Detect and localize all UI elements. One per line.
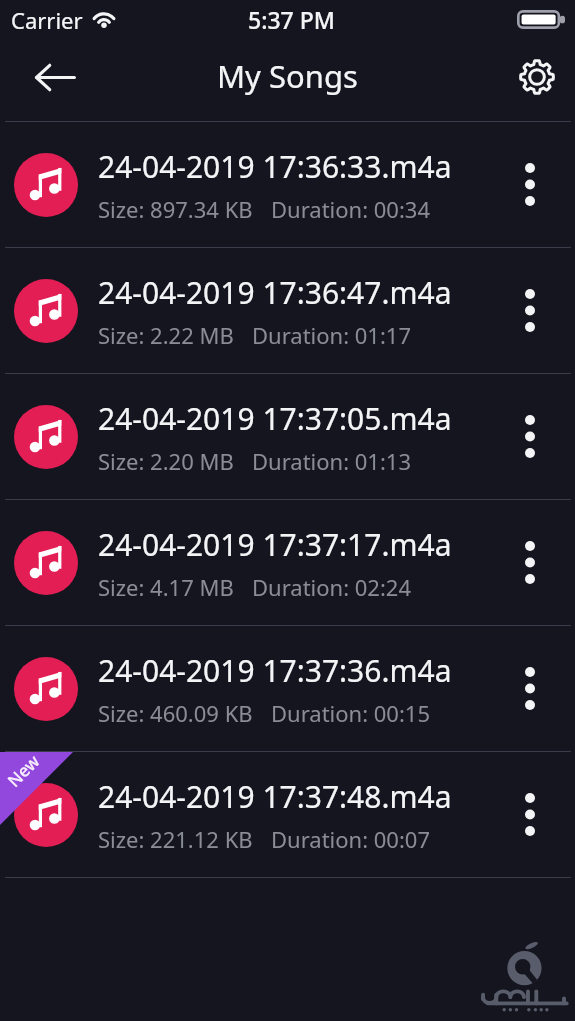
button[interactable]: Back	[22, 44, 88, 110]
button[interactable]: More options	[485, 500, 575, 625]
staticText: Size: 221.12 KB	[98, 824, 253, 854]
staticText: Duration: 00:07	[271, 824, 431, 854]
button[interactable]: 24-04-2019 17:37:17.m4a	[0, 500, 575, 625]
staticText: 24-04-2019 17:36:47.m4a	[98, 272, 452, 313]
button[interactable]: 24-04-2019 17:37:36.m4a	[0, 626, 575, 751]
button[interactable]: 24-04-2019 17:36:33.m4a	[0, 122, 575, 247]
button[interactable]: More options	[485, 374, 575, 499]
staticText: Duration: 01:13	[252, 446, 412, 476]
staticText: New	[2, 749, 45, 792]
staticText: Size: 897.34 KB	[98, 194, 253, 224]
staticText: 24-04-2019 17:37:05.m4a	[98, 398, 452, 439]
staticText: Duration: 01:17	[252, 320, 412, 350]
button[interactable]: 24-04-2019 17:37:05.m4a	[0, 374, 575, 499]
button[interactable]: 24-04-2019 17:37:48.m4a	[0, 752, 575, 877]
button[interactable]: More options	[485, 752, 575, 877]
staticText: Duration: 00:15	[271, 698, 431, 728]
button[interactable]: More options	[485, 626, 575, 751]
staticText: 24-04-2019 17:37:17.m4a	[98, 524, 452, 565]
staticText: Size: 4.17 MB	[98, 572, 234, 602]
staticText: My Songs	[217, 55, 358, 97]
staticText: Carrier	[11, 5, 83, 35]
staticText: Duration: 00:34	[271, 194, 431, 224]
staticText: 24-04-2019 17:37:36.m4a	[98, 650, 452, 691]
button[interactable]: 24-04-2019 17:36:47.m4a	[0, 248, 575, 373]
staticText: 5:37 PM	[248, 4, 335, 35]
staticText: 24-04-2019 17:37:48.m4a	[98, 776, 452, 817]
button[interactable]: More options	[485, 122, 575, 247]
staticText: Size: 460.09 KB	[98, 698, 253, 728]
button[interactable]: More options	[485, 248, 575, 373]
staticText: 24-04-2019 17:36:33.m4a	[98, 146, 452, 187]
button[interactable]: Settings	[504, 44, 570, 110]
staticText: Size: 2.22 MB	[98, 320, 234, 350]
staticText: Duration: 02:24	[252, 572, 412, 602]
staticText: Size: 2.20 MB	[98, 446, 234, 476]
